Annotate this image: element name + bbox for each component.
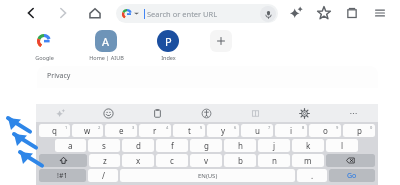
button[interactable]: [39, 154, 87, 167]
button[interactable]: Bookmark: [314, 3, 334, 23]
button[interactable]: Forward: [52, 2, 74, 24]
button[interactable]: t: [173, 124, 205, 137]
button[interactable]: Privacy: [37, 66, 378, 88]
staticText: 7: [268, 125, 271, 130]
button[interactable]: !#1: [39, 169, 86, 182]
button[interactable]: m: [292, 154, 324, 167]
staticText: EN(US): [198, 172, 218, 180]
staticText: p: [357, 125, 362, 136]
button[interactable]: e: [105, 124, 137, 137]
staticText: 1: [65, 125, 68, 130]
staticText: .: [311, 170, 314, 181]
staticText: 2: [98, 125, 101, 130]
staticText: 5: [200, 125, 203, 130]
button[interactable]: g: [190, 139, 222, 152]
staticText: Home | AIUB: [89, 54, 124, 61]
button[interactable]: d: [122, 139, 154, 152]
button[interactable]: r: [139, 124, 171, 137]
button[interactable]: Add shortcut: [210, 30, 232, 52]
button[interactable]: h: [224, 139, 256, 152]
button[interactable]: l: [326, 139, 358, 152]
button[interactable]: x: [122, 154, 154, 167]
button[interactable]: w: [72, 124, 103, 137]
button[interactable]: a: [55, 139, 86, 152]
button[interactable]: Tabs: [342, 3, 362, 23]
button[interactable]: Voice search: [260, 6, 276, 22]
staticText: Go: [347, 171, 357, 181]
button[interactable]: u: [241, 124, 273, 137]
button[interactable]: EN(US): [120, 169, 295, 182]
staticText: k: [306, 140, 311, 151]
staticText: P: [165, 34, 172, 49]
button[interactable]: Search or enter URL: [116, 4, 278, 23]
button[interactable]: Sparkle: [286, 3, 306, 23]
staticText: d: [136, 140, 141, 151]
button[interactable]: Menu: [370, 3, 390, 23]
staticText: 4: [166, 125, 169, 130]
button[interactable]: i: [275, 124, 307, 137]
button[interactable]: y: [207, 124, 239, 137]
staticText: o: [323, 125, 328, 136]
staticText: l: [341, 140, 344, 151]
button[interactable]: j: [258, 139, 290, 152]
button[interactable]: Translate: [182, 104, 231, 122]
staticText: m: [304, 155, 312, 166]
staticText: g: [204, 140, 209, 151]
staticText: h: [238, 140, 243, 151]
button[interactable]: Home: [84, 2, 106, 24]
button[interactable]: z: [89, 154, 120, 167]
staticText: 0: [370, 125, 373, 130]
button[interactable]: s: [88, 139, 120, 152]
button[interactable]: More: [329, 104, 378, 122]
button[interactable]: /: [88, 169, 118, 182]
button[interactable]: v: [190, 154, 222, 167]
staticText: c: [170, 155, 174, 166]
button[interactable]: p: [343, 124, 375, 137]
button[interactable]: Split: [231, 104, 280, 122]
staticText: s: [102, 140, 106, 151]
staticText: Index: [161, 54, 176, 61]
staticText: Google: [35, 54, 54, 61]
staticText: 6: [234, 125, 237, 130]
staticText: w: [84, 125, 91, 136]
staticText: !#1: [57, 171, 68, 181]
button[interactable]: Back: [20, 2, 42, 24]
button[interactable]: Sticker: [36, 104, 84, 122]
staticText: j: [273, 140, 276, 151]
staticText: z: [103, 155, 107, 166]
button[interactable]: k: [292, 139, 324, 152]
button[interactable]: .: [297, 169, 327, 182]
staticText: 8: [302, 125, 305, 130]
staticText: a: [68, 140, 73, 151]
staticText: y: [221, 125, 226, 136]
staticText: x: [136, 155, 141, 166]
button[interactable]: f: [156, 139, 188, 152]
staticText: t: [188, 125, 191, 136]
staticText: v: [204, 155, 209, 166]
button[interactable]: Clipboard: [133, 104, 182, 122]
button[interactable]: Settings: [280, 104, 329, 122]
button[interactable]: [326, 154, 375, 167]
button[interactable]: q: [39, 124, 70, 137]
staticText: e: [119, 125, 124, 136]
button[interactable]: Google: [24, 30, 64, 61]
button[interactable]: A: [86, 30, 126, 61]
staticText: A: [102, 34, 110, 49]
staticText: i: [290, 125, 293, 136]
staticText: f: [171, 140, 174, 151]
staticText: /: [102, 170, 105, 181]
button[interactable]: b: [224, 154, 256, 167]
staticText: Privacy: [47, 71, 71, 81]
button[interactable]: n: [258, 154, 290, 167]
staticText: u: [255, 125, 260, 136]
button[interactable]: Emoji: [84, 104, 133, 122]
button[interactable]: c: [156, 154, 188, 167]
staticText: b: [238, 155, 243, 166]
button[interactable]: P: [148, 30, 188, 61]
staticText: Search or enter URL: [147, 9, 218, 19]
staticText: q: [52, 125, 57, 136]
button[interactable]: o: [309, 124, 341, 137]
staticText: n: [272, 155, 277, 166]
staticText: 9: [336, 125, 339, 130]
button[interactable]: Go: [329, 169, 375, 182]
